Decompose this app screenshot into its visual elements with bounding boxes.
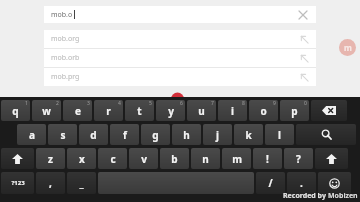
button[interactable]: t <box>125 100 154 121</box>
staticText: 5 <box>149 100 152 107</box>
staticText: u <box>198 104 205 118</box>
staticText: 0 <box>304 100 307 107</box>
staticText: 7 <box>211 100 214 107</box>
button[interactable]: a <box>17 124 46 145</box>
staticText: , <box>49 176 52 190</box>
staticText: / <box>268 176 273 190</box>
staticText: p <box>291 104 298 118</box>
staticText: a <box>29 128 35 142</box>
staticText: s <box>60 128 66 142</box>
button[interactable]: k <box>234 124 263 145</box>
staticText: Recorded by <box>283 191 328 201</box>
staticText: q <box>12 104 19 118</box>
button[interactable]: ?123 <box>1 172 34 194</box>
staticText: Mobizen <box>328 191 358 201</box>
staticText: mob.o <box>51 10 73 20</box>
staticText: 9 <box>273 100 276 107</box>
staticText: r <box>106 104 111 118</box>
button[interactable]: Shift <box>315 148 348 169</box>
staticText: mob.prg <box>51 72 80 82</box>
button[interactable]: m <box>222 148 251 169</box>
staticText: 6 <box>180 100 183 107</box>
button[interactable]: d <box>79 124 108 145</box>
button[interactable]: _ <box>67 172 96 194</box>
staticText: o <box>260 104 267 118</box>
staticText: e <box>75 104 81 118</box>
button[interactable]: mob.org <box>44 30 316 48</box>
button[interactable]: s <box>48 124 77 145</box>
button[interactable]: Backspace <box>311 100 347 121</box>
button[interactable]: Clear text <box>297 9 309 21</box>
button[interactable]: n <box>191 148 220 169</box>
other: Insert suggestion <box>300 54 309 63</box>
button[interactable]: Search <box>296 124 356 145</box>
button[interactable]: u <box>187 100 216 121</box>
button[interactable]: , <box>36 172 65 194</box>
button[interactable]: r <box>94 100 123 121</box>
staticText: 8 <box>242 100 245 107</box>
staticText: i <box>231 104 234 118</box>
staticText: d <box>90 128 97 142</box>
staticText: 2 <box>56 100 59 107</box>
button[interactable]: y <box>156 100 185 121</box>
staticText: m <box>232 152 242 166</box>
staticText: . <box>300 176 303 190</box>
staticText: l <box>278 128 281 142</box>
staticText: v <box>141 152 147 166</box>
staticText: z <box>48 152 53 166</box>
staticText: y <box>168 104 174 118</box>
button[interactable]: Shift <box>1 148 34 169</box>
button[interactable]: ! <box>253 148 282 169</box>
staticText: mob.org <box>51 34 80 44</box>
button[interactable]: e <box>63 100 92 121</box>
button[interactable]: b <box>160 148 189 169</box>
other: Insert suggestion <box>300 35 309 44</box>
staticText: ?123 <box>11 179 25 187</box>
staticText: h <box>183 128 190 142</box>
staticText: j <box>216 128 219 142</box>
button[interactable]: w <box>32 100 61 121</box>
staticText <box>175 176 178 190</box>
button[interactable]: Space <box>98 172 254 194</box>
button[interactable]: c <box>98 148 127 169</box>
staticText: b <box>171 152 178 166</box>
staticText: 3 <box>87 100 90 107</box>
staticText: k <box>245 128 252 142</box>
button[interactable]: i <box>218 100 247 121</box>
other: Insert suggestion <box>300 73 309 82</box>
button[interactable]: mob.o <box>44 6 316 23</box>
button[interactable]: f <box>110 124 139 145</box>
button[interactable]: mob.orb <box>44 49 316 67</box>
button[interactable]: l <box>265 124 294 145</box>
button[interactable]: x <box>67 148 96 169</box>
staticText: n <box>202 152 209 166</box>
staticText: w <box>42 104 51 118</box>
staticText: f <box>123 128 127 142</box>
staticText: m <box>344 42 352 53</box>
staticText: x <box>79 152 85 166</box>
staticText: ? <box>296 152 301 166</box>
button[interactable]: j <box>203 124 232 145</box>
staticText: ! <box>266 152 269 166</box>
button[interactable]: Emoji <box>318 172 351 194</box>
staticText: mob.orb <box>51 53 80 63</box>
staticText: 4 <box>118 100 121 107</box>
button[interactable]: q <box>1 100 30 121</box>
button[interactable]: o <box>249 100 278 121</box>
button[interactable]: z <box>36 148 65 169</box>
staticText: t <box>137 104 142 118</box>
staticText: 1 <box>25 100 28 107</box>
staticText: c <box>110 152 116 166</box>
button[interactable]: . <box>287 172 316 194</box>
staticText: g <box>152 128 159 142</box>
button[interactable]: v <box>129 148 158 169</box>
button[interactable]: / <box>256 172 285 194</box>
button[interactable]: g <box>141 124 170 145</box>
button[interactable]: mob.prg <box>44 68 316 86</box>
staticText: _ <box>79 176 84 190</box>
button[interactable]: h <box>172 124 201 145</box>
button[interactable]: ? <box>284 148 313 169</box>
button[interactable]: p <box>280 100 309 121</box>
button[interactable]: Mobizen recorder <box>339 39 356 56</box>
